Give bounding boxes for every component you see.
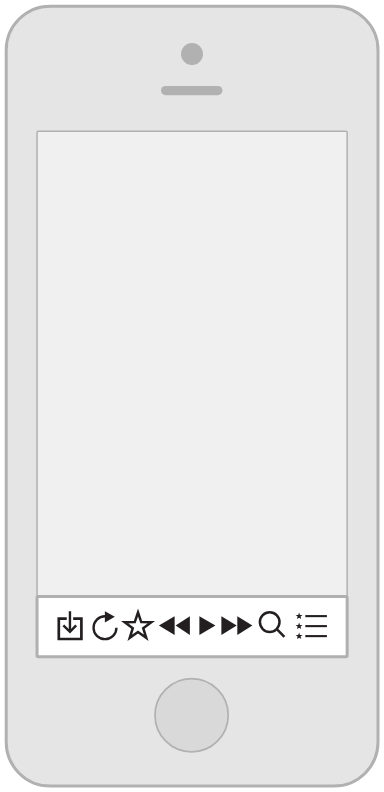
button[interactable]: Favourite bbox=[121, 597, 155, 656]
button[interactable]: Rewind bbox=[155, 597, 192, 656]
button[interactable]: Save bbox=[38, 597, 87, 656]
button[interactable]: Fast forward bbox=[218, 597, 256, 656]
button[interactable]: Playlist bbox=[290, 597, 346, 656]
button[interactable]: Search bbox=[256, 597, 290, 656]
button[interactable]: Play bbox=[192, 597, 218, 656]
button[interactable]: Redo bbox=[87, 597, 121, 656]
